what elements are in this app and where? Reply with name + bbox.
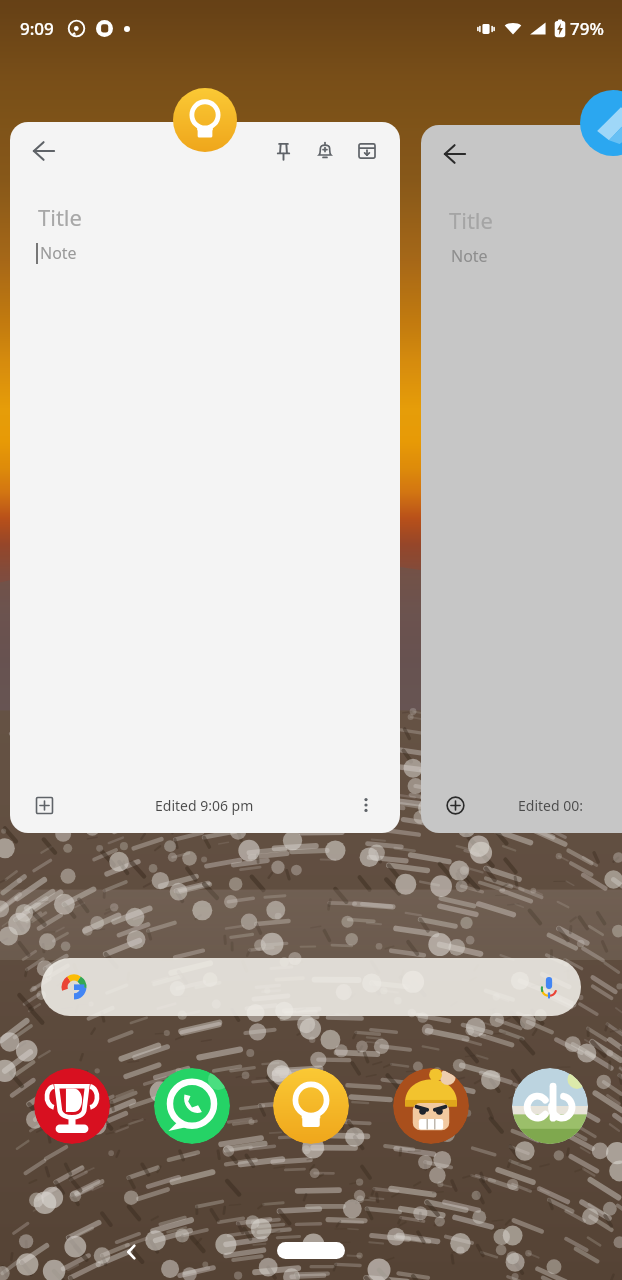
staticText: Title [38, 202, 82, 232]
button[interactable]: Pin note [262, 130, 304, 172]
button[interactable]: Add item [24, 785, 64, 825]
button[interactable]: Archive [346, 130, 388, 172]
staticText: Title [449, 205, 493, 235]
button[interactable]: WhatsApp [154, 1068, 230, 1144]
button[interactable]: Clash of Clans [393, 1068, 469, 1144]
button[interactable]: Back [22, 129, 66, 173]
staticText: Note [451, 245, 488, 267]
staticText: 9:09 [20, 17, 54, 40]
staticText: Edited 9:06 pm [155, 796, 254, 815]
button[interactable] [41, 958, 581, 1016]
button[interactable]: Add reminder [304, 130, 346, 172]
button[interactable]: Back [433, 132, 477, 176]
button[interactable]: Google Keep [273, 1068, 349, 1144]
button[interactable]: Cricbuzz [512, 1068, 588, 1144]
button[interactable]: Back [10, 122, 400, 833]
button[interactable]: Back [421, 125, 622, 833]
button[interactable]: More options [346, 785, 386, 825]
button[interactable]: Dream11 [34, 1068, 110, 1144]
button[interactable]: Back [112, 1232, 152, 1272]
staticText: Note [40, 242, 77, 264]
button[interactable]: Add item [435, 785, 475, 825]
staticText: 79% [570, 17, 604, 40]
staticText: Edited 00: [518, 796, 583, 815]
button[interactable]: Home [277, 1242, 345, 1259]
